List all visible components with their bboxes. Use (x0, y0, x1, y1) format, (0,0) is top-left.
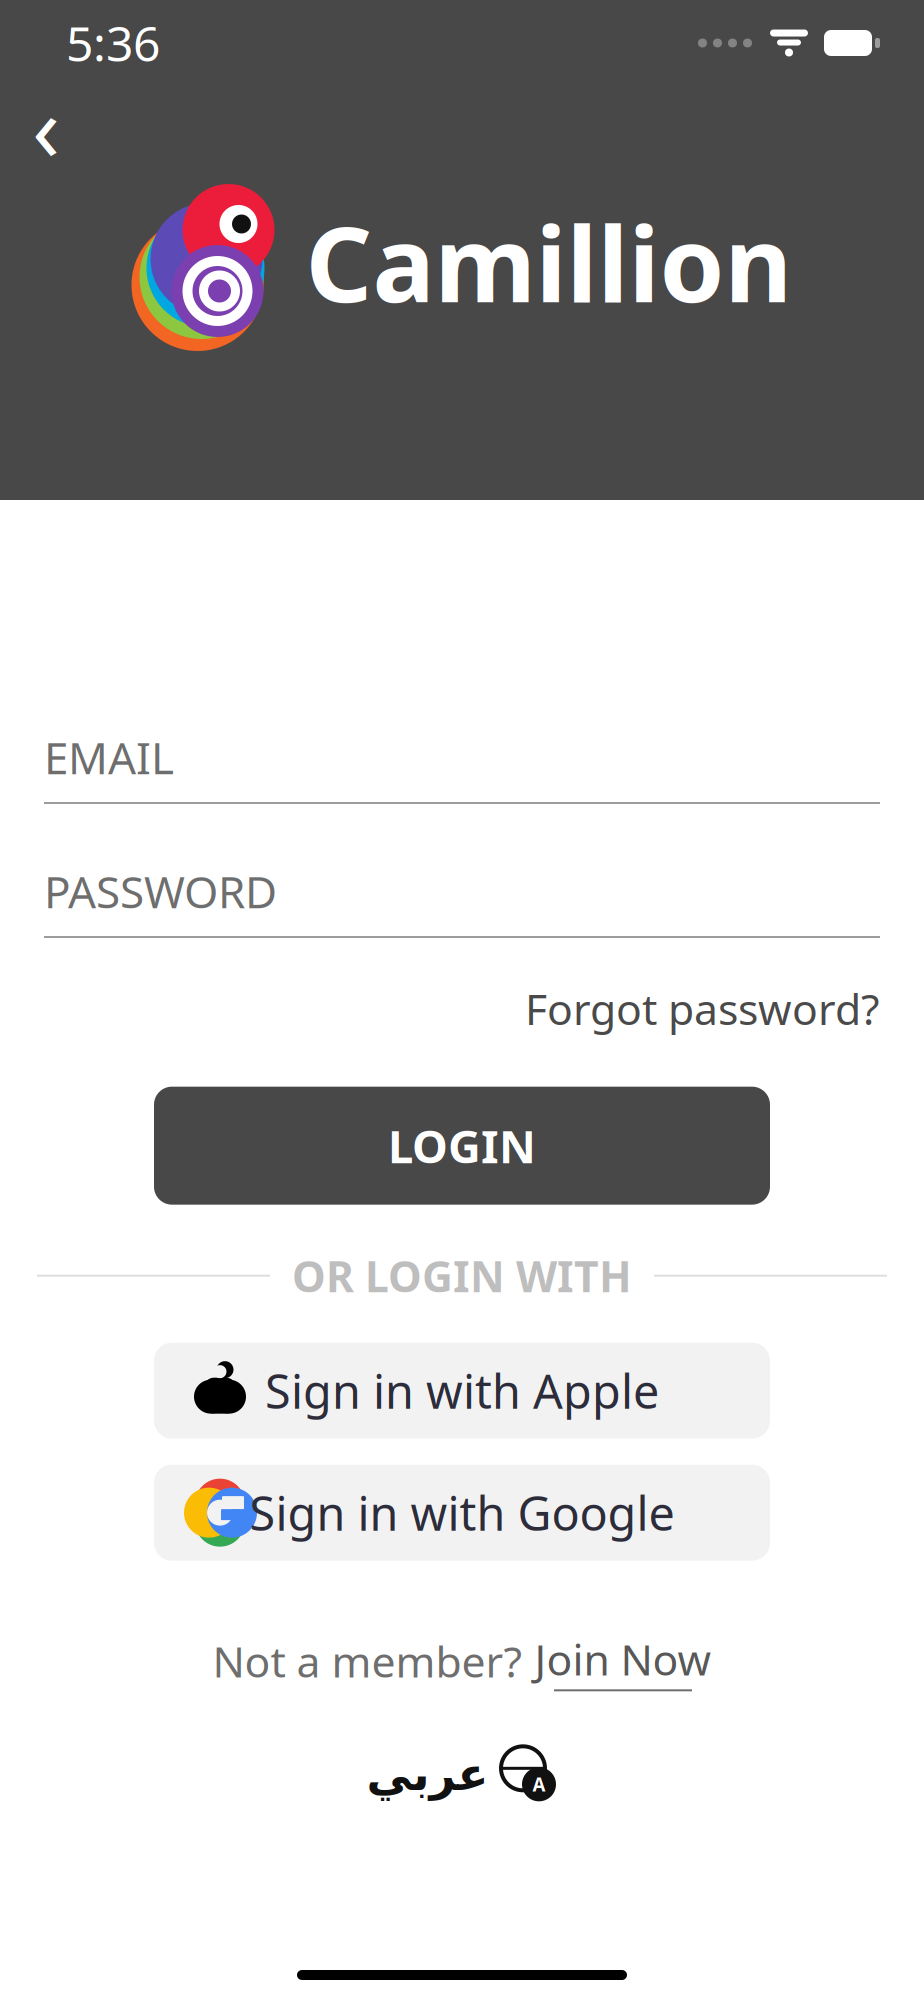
staticText: ‹ (32, 66, 60, 186)
staticText: EMAIL (44, 728, 174, 786)
button[interactable]: LOGIN (154, 1087, 770, 1205)
staticText: Sign in with Google (249, 1482, 674, 1544)
staticText: Not a member? (212, 1633, 522, 1689)
staticText: Sign in with Apple (265, 1360, 659, 1422)
button[interactable]: Sign in with Apple (154, 1343, 770, 1439)
staticText: Join Now (534, 1631, 711, 1687)
button[interactable]: Not a member? (212, 1623, 711, 1699)
button[interactable]: Sign in with Google (154, 1465, 770, 1561)
staticText: Camillion (305, 193, 792, 331)
staticText: عربي (366, 1749, 488, 1800)
staticText: Forgot password? (525, 980, 880, 1037)
staticText: 5:36 (66, 11, 160, 75)
button[interactable]: Forgot password? (525, 972, 880, 1045)
button[interactable]: Back (6, 86, 86, 166)
staticText: OR LOGIN WITH (292, 1247, 632, 1304)
button[interactable]: عربي (366, 1737, 558, 1811)
staticText: PASSWORD (44, 862, 277, 920)
staticText: A (532, 1772, 545, 1797)
staticText: LOGIN (388, 1116, 536, 1176)
